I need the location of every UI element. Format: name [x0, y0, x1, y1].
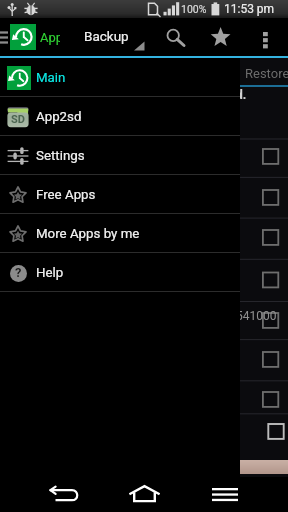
button[interactable]: Favorites — [209, 25, 233, 49]
button[interactable]: More options — [254, 25, 280, 51]
button[interactable]: Home — [126, 480, 162, 508]
button[interactable]: Recent apps — [205, 480, 245, 508]
button[interactable]: More Apps by me — [0, 214, 240, 253]
staticText: Backup — [84, 28, 129, 44]
staticText: App2sd — [36, 109, 82, 125]
staticText: More Apps by me — [36, 226, 140, 242]
staticText: Main — [36, 70, 66, 86]
staticText: 100% — [181, 3, 207, 15]
staticText: 11:53 pm — [224, 2, 275, 16]
staticText: 541000 — [236, 309, 277, 323]
button[interactable]: Back — [44, 480, 84, 508]
staticText: Help — [36, 265, 64, 281]
button[interactable]: SD — [0, 97, 240, 136]
button[interactable]: Free Apps — [0, 175, 240, 214]
button[interactable]: Open navigation drawer — [0, 18, 10, 58]
button[interactable]: Settings — [0, 136, 240, 175]
button[interactable]: ? — [0, 253, 240, 292]
button[interactable]: Backup — [72, 19, 150, 57]
button[interactable]: Main — [0, 58, 240, 97]
button[interactable]: App Backup Restore — [10, 24, 36, 50]
staticText: Free Apps — [36, 187, 96, 203]
staticText: Apps — [40, 30, 60, 45]
button[interactable]: Search — [161, 24, 187, 50]
staticText: ? — [15, 265, 22, 280]
staticText: SD — [11, 113, 25, 126]
staticText: Settings — [36, 148, 85, 164]
staticText: Restore — [245, 66, 288, 81]
staticText: d. — [236, 88, 247, 102]
